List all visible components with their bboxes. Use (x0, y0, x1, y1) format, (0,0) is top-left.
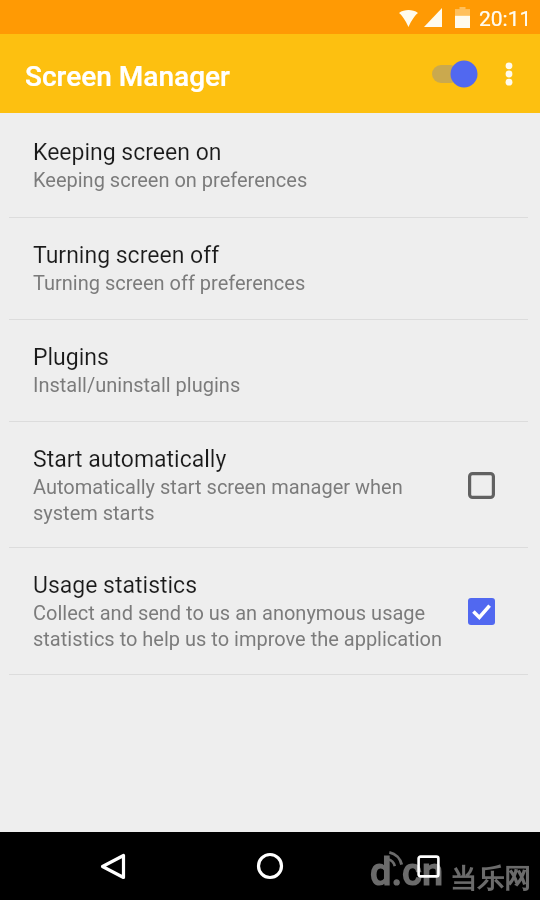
button[interactable]: Turning screen off (0, 218, 540, 319)
button[interactable]: Plugins (0, 320, 540, 421)
button[interactable]: Back (88, 832, 138, 900)
staticText: d.cn (370, 850, 444, 895)
button[interactable]: Recent apps (403, 832, 453, 900)
other: Mobile signal (424, 8, 442, 27)
staticText: Collect and send to us an anonymous usag… (33, 601, 443, 650)
staticText: Turning screen off (33, 242, 220, 269)
staticText: Plugins (33, 344, 109, 371)
staticText: Start automatically (33, 446, 227, 473)
staticText: Keeping screen on (33, 139, 222, 166)
staticText: Automatically start screen manager when … (33, 475, 443, 524)
button[interactable]: Home (245, 832, 295, 900)
other: Wi-Fi (399, 11, 418, 27)
other: Battery (455, 7, 470, 28)
staticText: Usage statistics (33, 572, 198, 599)
button[interactable]: Start automatically (0, 422, 540, 547)
button[interactable]: Usage statistics (0, 548, 540, 674)
staticText: Keeping screen on preferences (33, 168, 308, 191)
button[interactable]: More options (485, 50, 533, 98)
staticText: Turning screen off preferences (33, 271, 306, 294)
staticText: 当乐网 (450, 862, 531, 896)
button[interactable]: Toggle screen manager (424, 54, 482, 94)
button[interactable]: Keeping screen on (0, 113, 540, 217)
button[interactable]: Checked checkbox (457, 587, 505, 635)
button[interactable]: Unchecked checkbox (457, 461, 505, 509)
staticText: 20:11 (479, 7, 532, 32)
staticText: Install/uninstall plugins (33, 373, 241, 396)
staticText: Screen Manager (25, 60, 230, 93)
